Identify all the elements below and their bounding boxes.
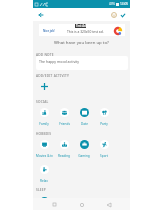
staticText: ADD NOTE [36, 53, 54, 57]
button[interactable]: Gaming [74, 140, 94, 158]
button[interactable]: Mood [108, 9, 120, 21]
staticText: The happy mood activity [39, 59, 80, 64]
staticText: Party [100, 122, 108, 126]
staticText: Sport [100, 154, 108, 158]
staticText: Nice job! [43, 29, 55, 33]
staticText: HOBBIES [36, 132, 52, 136]
button[interactable]: Friends [54, 108, 74, 126]
staticText: Family [39, 122, 49, 126]
staticText: Friends [59, 122, 70, 126]
button[interactable]: Back [35, 9, 47, 21]
staticText: SOCIAL [36, 100, 49, 104]
button[interactable] [40, 197, 49, 206]
staticText: Test Ad [76, 24, 86, 28]
staticText: Date [81, 122, 88, 126]
staticText: Gaming [78, 154, 90, 158]
staticText: What have you been up to? [33, 39, 130, 45]
button[interactable]: Family [34, 108, 54, 126]
staticText: Movies & tv [36, 154, 53, 158]
staticText: SLEEP [36, 188, 46, 192]
staticText: Reading [58, 154, 70, 158]
button[interactable]: Reading [54, 140, 74, 158]
button[interactable]: Sport [94, 140, 114, 158]
button[interactable]: Date [74, 108, 94, 126]
button[interactable]: Relax [34, 165, 54, 183]
staticText: 43% [109, 2, 115, 6]
staticText: ADD/EDIT ACTIVITY [36, 74, 69, 78]
button[interactable]: Home [76, 199, 87, 210]
staticText: Relax [40, 179, 48, 183]
button[interactable]: Save [117, 9, 129, 21]
button[interactable]: Add activity [38, 80, 51, 93]
staticText: 14:05 [120, 2, 129, 6]
button[interactable]: Party [94, 108, 114, 126]
button[interactable]: Recents [49, 199, 60, 210]
button[interactable]: Back [103, 199, 114, 210]
button[interactable]: Nice job! [39, 24, 125, 36]
button[interactable]: Movies & tv [34, 140, 54, 158]
button[interactable]: The happy mood activity [36, 56, 128, 70]
staticText: This is a 320x50 test ad. [67, 29, 104, 33]
